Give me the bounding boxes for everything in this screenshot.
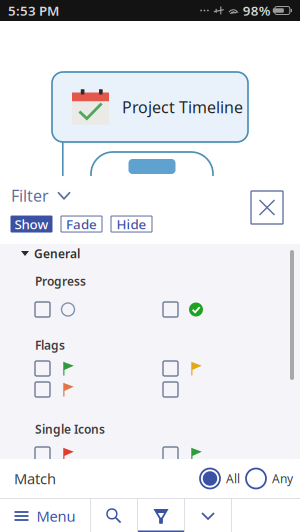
button[interactable]: Any bbox=[246, 467, 293, 489]
button[interactable]: Filter bbox=[138, 499, 184, 532]
staticText: Single Icons bbox=[35, 421, 105, 437]
button[interactable] bbox=[35, 447, 79, 462]
button[interactable] bbox=[35, 302, 79, 317]
button[interactable] bbox=[163, 382, 207, 397]
staticText: Hide bbox=[116, 215, 146, 233]
staticText: Menu bbox=[36, 506, 75, 526]
button[interactable]: All bbox=[200, 467, 240, 489]
button[interactable] bbox=[35, 361, 79, 376]
staticText: Match bbox=[14, 469, 56, 488]
staticText: Filter bbox=[11, 185, 49, 206]
button[interactable]: General bbox=[0, 247, 300, 260]
staticText: General bbox=[34, 245, 80, 261]
staticText: Project Timeline bbox=[122, 96, 243, 118]
button[interactable]: Project Timeline bbox=[52, 72, 248, 142]
staticText: Flags bbox=[35, 337, 65, 353]
button[interactable]: Show bbox=[11, 216, 52, 232]
button[interactable] bbox=[35, 382, 79, 397]
button[interactable] bbox=[163, 447, 207, 462]
staticText: All bbox=[226, 470, 240, 486]
button[interactable] bbox=[163, 361, 207, 376]
button[interactable]: Filter bbox=[11, 188, 70, 203]
staticText: 5:53 PM bbox=[8, 2, 59, 19]
staticText: Progress bbox=[35, 273, 86, 289]
button[interactable]: Hide bbox=[111, 216, 152, 232]
button[interactable]: Search bbox=[91, 499, 137, 532]
staticText: 98% bbox=[243, 2, 271, 19]
button[interactable] bbox=[163, 302, 207, 317]
staticText: Show bbox=[14, 215, 48, 233]
button[interactable]: Menu bbox=[0, 499, 90, 532]
button[interactable]: Close bbox=[251, 191, 283, 224]
button[interactable]: Fade bbox=[61, 216, 102, 232]
staticText: Any bbox=[272, 470, 293, 486]
staticText: Fade bbox=[66, 215, 97, 233]
button[interactable]: Collapse bbox=[185, 499, 231, 532]
